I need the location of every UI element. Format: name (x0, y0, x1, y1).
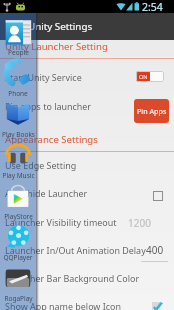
staticText: Play Books (2, 130, 35, 139)
staticText: Launcher In/Out Animation Delay (5, 244, 146, 256)
button[interactable]: Auto hide Launcher (0, 178, 174, 207)
staticText: Launcher Bar Background Color (5, 272, 140, 284)
staticText: People (8, 48, 29, 57)
staticText: 400 (146, 243, 164, 257)
staticText: PlayStore (4, 212, 33, 221)
button[interactable]: Launcher In/Out Animation Delay (0, 235, 174, 264)
staticText: 2:54 (142, 0, 163, 12)
staticText: Launcher Visibility timeout (5, 216, 117, 228)
staticText: Pin apps to launcher (5, 100, 92, 112)
button[interactable]: Start Unity Service toggle (136, 71, 164, 82)
staticText: Use Edge Setting (5, 159, 77, 171)
button[interactable]: Checkbox (152, 302, 163, 310)
staticText: Unity Launcher Setting (5, 40, 108, 52)
staticText: RogaPlay (4, 294, 33, 303)
staticText: Play Music (2, 171, 35, 180)
button[interactable]: Use Edge Setting (0, 150, 174, 179)
staticText: 1200 (128, 216, 151, 230)
button[interactable]: Pin apps to launcher (0, 91, 174, 120)
button[interactable]: QQPlayer (0, 222, 36, 263)
staticText: ON (139, 73, 148, 80)
button[interactable]: People (0, 17, 36, 58)
staticText: Pin Apps (137, 106, 167, 116)
button[interactable]: RogaPlay (0, 263, 36, 304)
staticText: Auto hide Launcher (5, 187, 88, 199)
staticText: Appearance Settings (5, 133, 98, 145)
button[interactable]: Phone (0, 58, 36, 99)
staticText: QQPlayer (3, 253, 33, 262)
button[interactable]: Checkbox (152, 190, 163, 201)
button[interactable]: Play Music (0, 140, 36, 181)
button[interactable]: Play Books (0, 99, 36, 140)
button[interactable]: Start Unity Service (0, 62, 174, 91)
button[interactable]: Pin Apps (134, 99, 169, 123)
button[interactable]: Launcher Visibility timeout (0, 207, 174, 236)
button[interactable]: Launcher Bar Background Color (0, 263, 174, 292)
staticText: Phone (8, 89, 28, 98)
staticText: Start Unity Service (5, 71, 82, 83)
staticText: Show App name below Icon (5, 300, 121, 310)
button[interactable]: PlayStore (0, 181, 36, 222)
staticText: Unity Settings (28, 20, 93, 33)
button[interactable]: Show App name below Icon (0, 291, 174, 310)
